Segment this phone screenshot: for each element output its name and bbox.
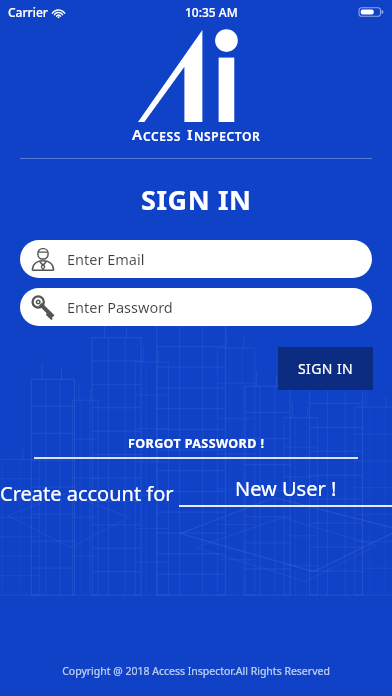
button[interactable]: FORGOT PASSWORD ! [34,435,358,459]
staticText: Enter Email [67,249,145,269]
staticText: CCESS [143,128,181,144]
button[interactable]: SIGN IN [278,347,373,390]
staticText: A [132,124,143,144]
button[interactable]: Enter Password [20,288,372,326]
staticText: SIGN IN [298,359,354,378]
staticText: Enter Password [67,297,173,317]
staticText: FORGOT PASSWORD ! [128,435,265,452]
staticText: Carrier [8,4,48,20]
button[interactable]: New User ! [179,475,392,507]
staticText: NSPECTOR [194,128,261,144]
staticText: 10:35 AM [185,4,238,20]
staticText: SIGN IN [141,181,252,218]
staticText: Copyright @ 2018 Access Inspector.All Ri… [0,664,392,678]
staticText: I [187,124,194,144]
staticText: Create account for [0,480,179,507]
button[interactable]: Enter Email [20,240,372,278]
staticText: New User ! [235,475,337,502]
